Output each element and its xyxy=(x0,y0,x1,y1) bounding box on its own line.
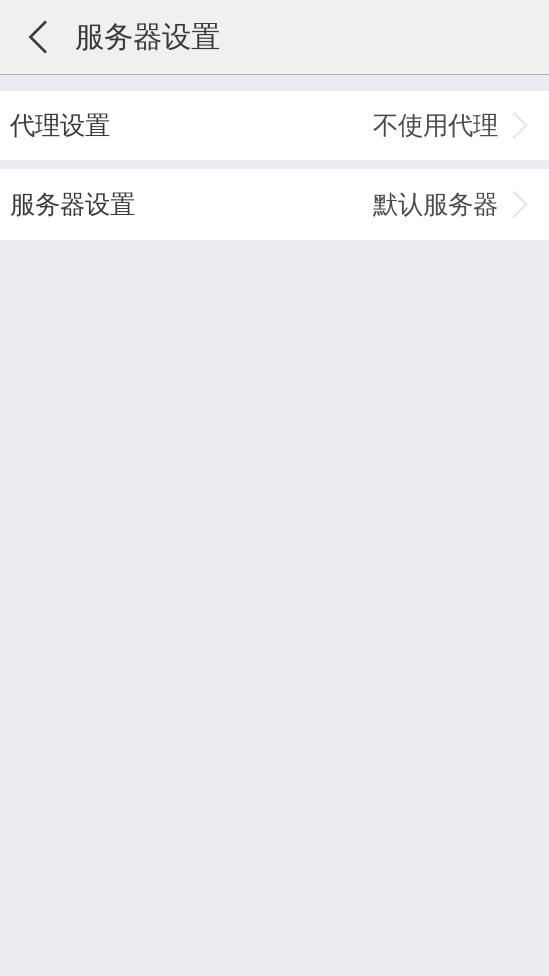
button[interactable]: Back xyxy=(0,0,75,74)
button[interactable]: 代理设置 xyxy=(0,91,549,160)
staticText: 代理设置 xyxy=(10,110,110,141)
staticText: 不使用代理 xyxy=(373,110,498,141)
staticText: 服务器设置 xyxy=(75,19,220,55)
staticText: 默认服务器 xyxy=(373,189,498,220)
staticText: 服务器设置 xyxy=(10,189,135,220)
button[interactable]: 服务器设置 xyxy=(0,169,549,240)
